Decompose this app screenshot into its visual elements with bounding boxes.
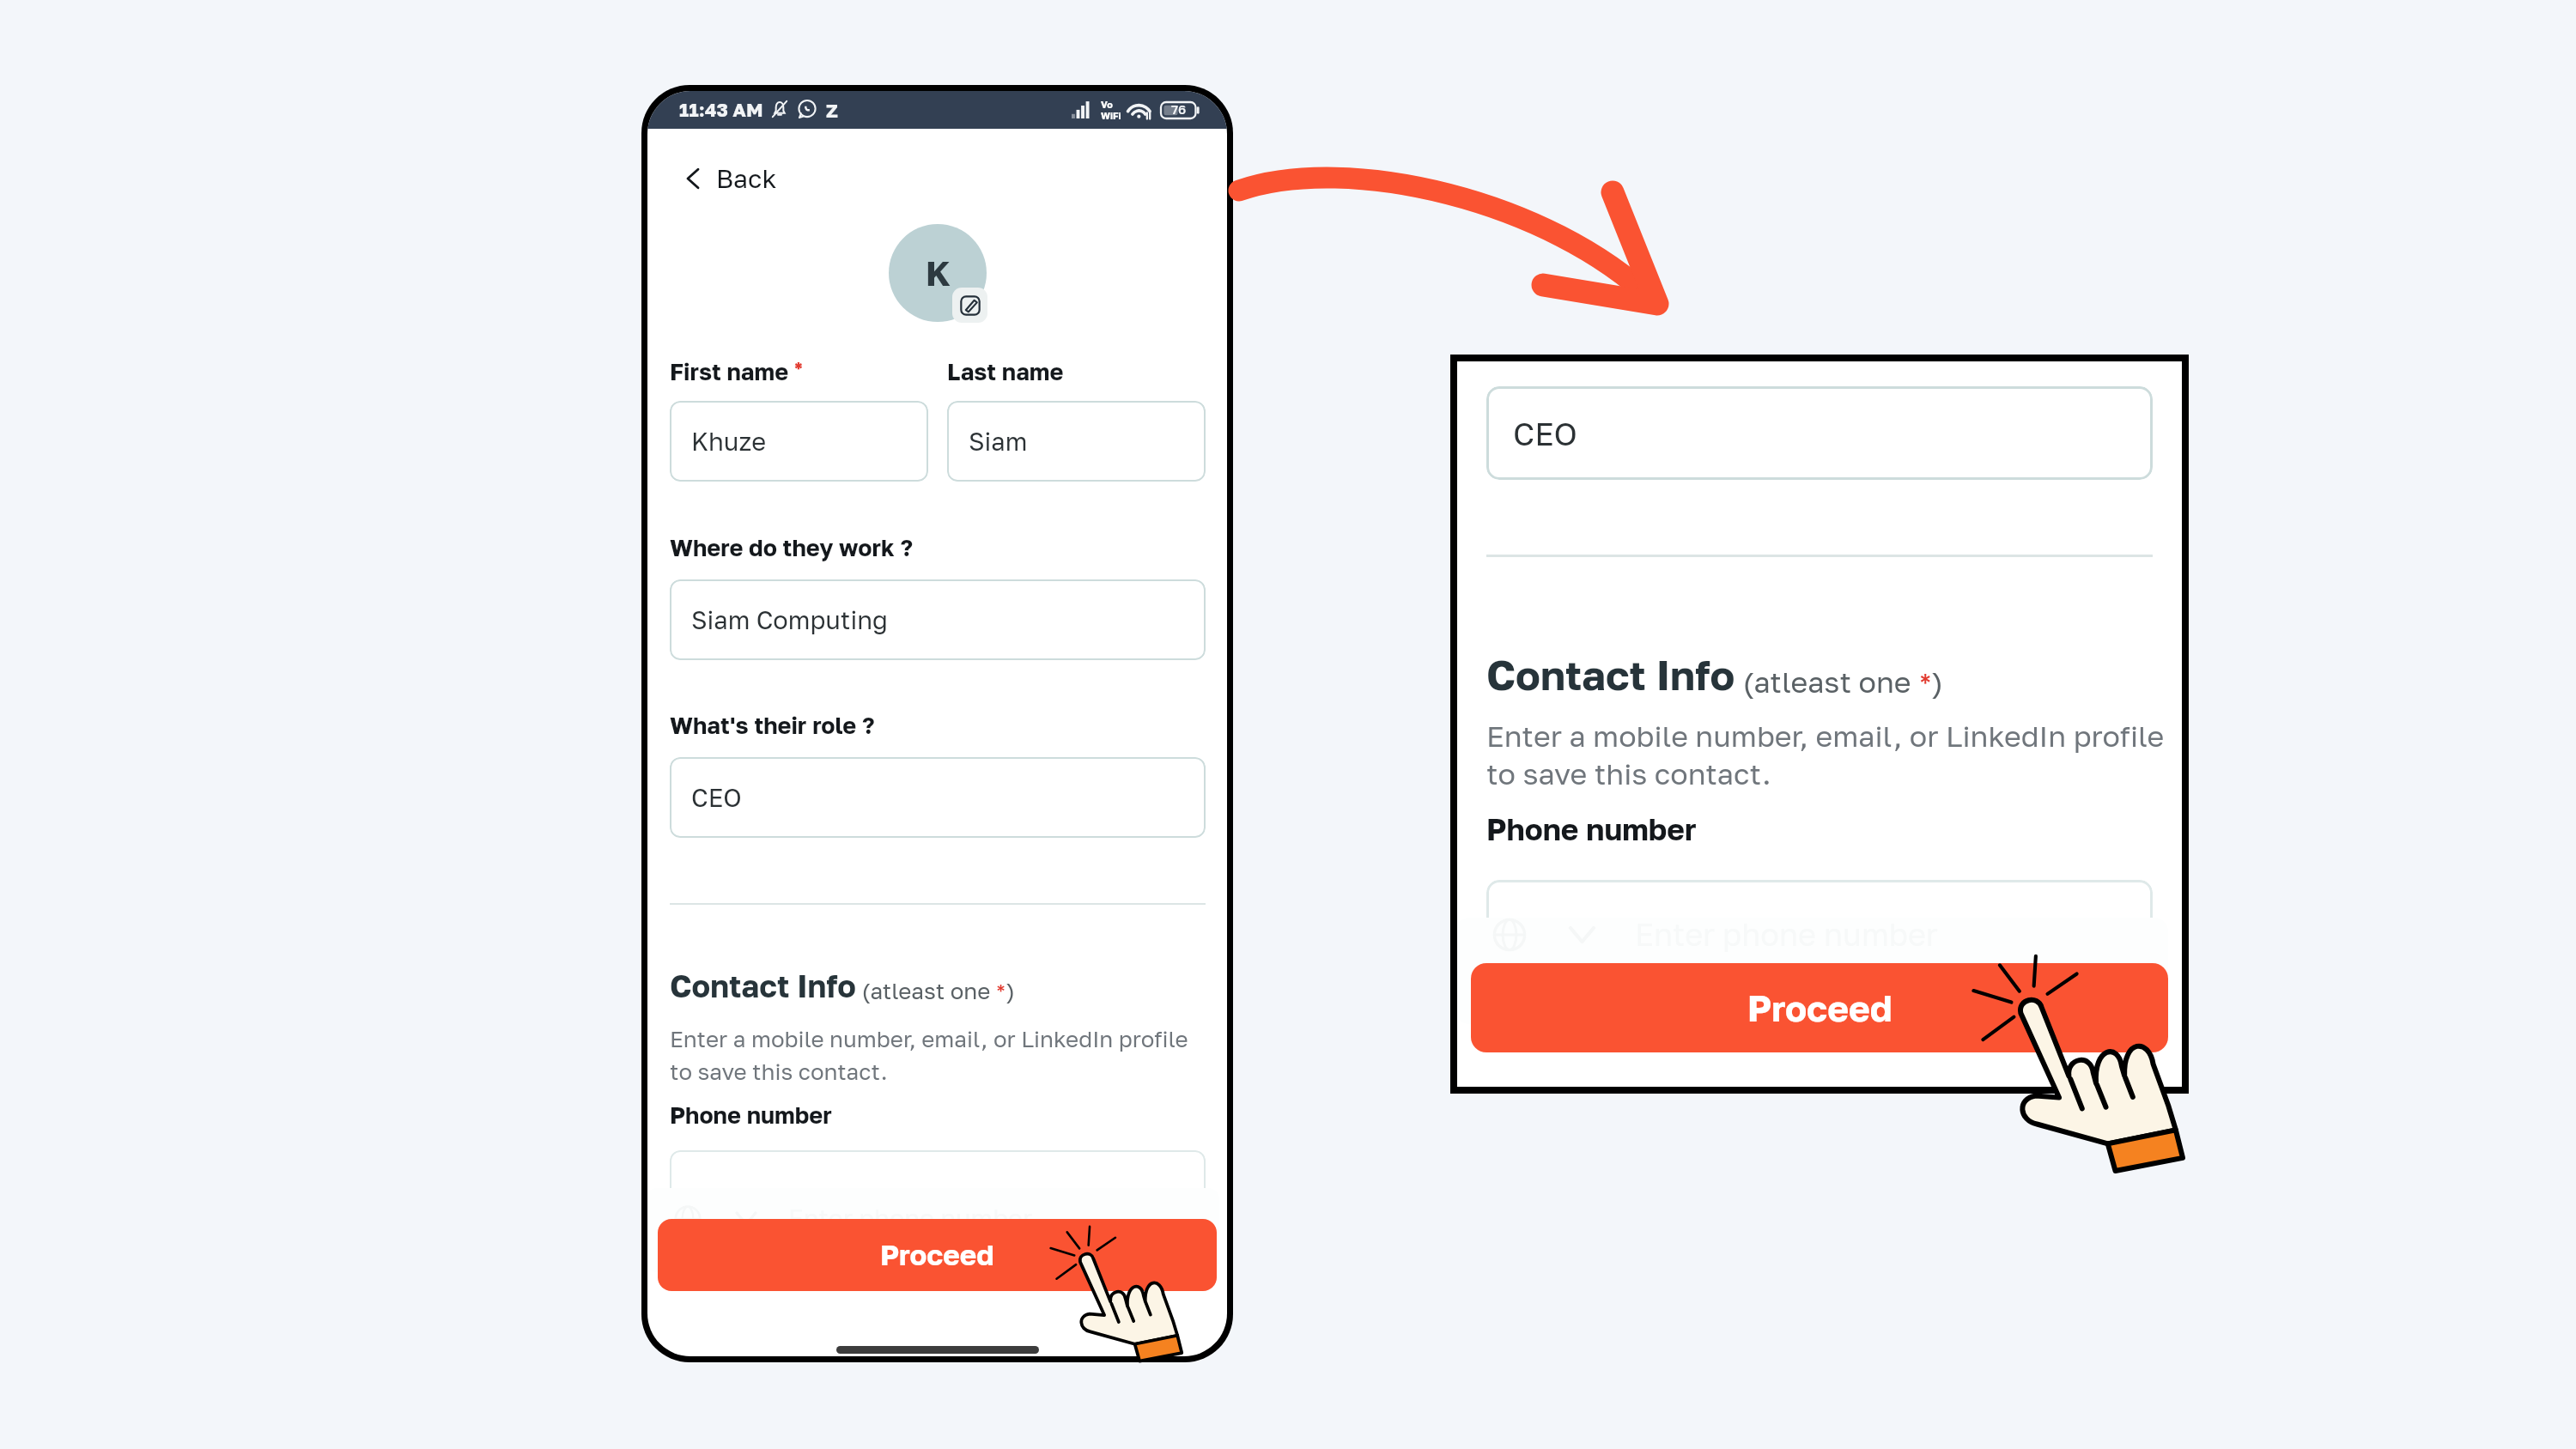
button[interactable]: Proceed — [658, 1219, 1217, 1291]
staticText: WiFi — [1101, 110, 1121, 121]
staticText: 11:43 AM — [679, 98, 763, 120]
staticText: Back — [716, 163, 777, 194]
button[interactable]: Siam Computing — [670, 579, 1206, 660]
button[interactable]: Enter phone number — [670, 1150, 1206, 1231]
staticText: Proceed — [1747, 986, 1893, 1029]
staticText: ) — [1006, 978, 1015, 1004]
button[interactable]: Edit photo — [952, 288, 987, 323]
staticText: Phone number — [670, 1101, 832, 1129]
staticText: Khuze — [691, 427, 767, 457]
button[interactable]: Enter phone number — [1486, 880, 2153, 981]
button[interactable]: Siam — [947, 401, 1206, 482]
staticText: Enter a mobile number, email, or LinkedI… — [1486, 718, 2165, 791]
button[interactable]: CEO — [1486, 386, 2153, 480]
staticText: Contact Info — [670, 967, 856, 1004]
button[interactable]: Proceed — [1471, 963, 2168, 1052]
staticText: Enter a mobile number, email, or LinkedI… — [670, 1026, 1188, 1085]
button[interactable]: Back — [677, 160, 781, 197]
staticText: What's their role ? — [670, 712, 875, 739]
staticText: Siam Computing — [691, 605, 888, 635]
staticText: (atleast one — [1735, 664, 1919, 700]
staticText: ) — [1932, 664, 1943, 700]
staticText: * — [789, 358, 804, 382]
staticText: Proceed — [880, 1238, 994, 1272]
staticText: * — [996, 979, 1006, 1004]
staticText: Siam — [969, 427, 1028, 457]
staticText: Last name — [947, 358, 1064, 385]
staticText: Contact Info — [1486, 650, 1735, 700]
staticText: Phone number — [1486, 811, 1697, 847]
staticText: Where do they work ? — [670, 534, 914, 561]
staticText: 76 — [1171, 101, 1187, 117]
staticText: * — [1919, 666, 1932, 700]
staticText: CEO — [691, 783, 742, 813]
staticText: Enter phone number — [788, 1203, 1033, 1234]
staticText: K — [926, 252, 951, 294]
staticText: CEO — [1513, 415, 1577, 452]
button[interactable]: CEO — [670, 757, 1206, 838]
button[interactable]: Profile avatar — [889, 224, 987, 322]
staticText: (atleast one — [856, 978, 996, 1004]
staticText: First name — [670, 358, 789, 385]
button[interactable]: Khuze — [670, 401, 928, 482]
staticText: Vo — [1101, 99, 1113, 110]
staticText: Z — [826, 99, 838, 121]
